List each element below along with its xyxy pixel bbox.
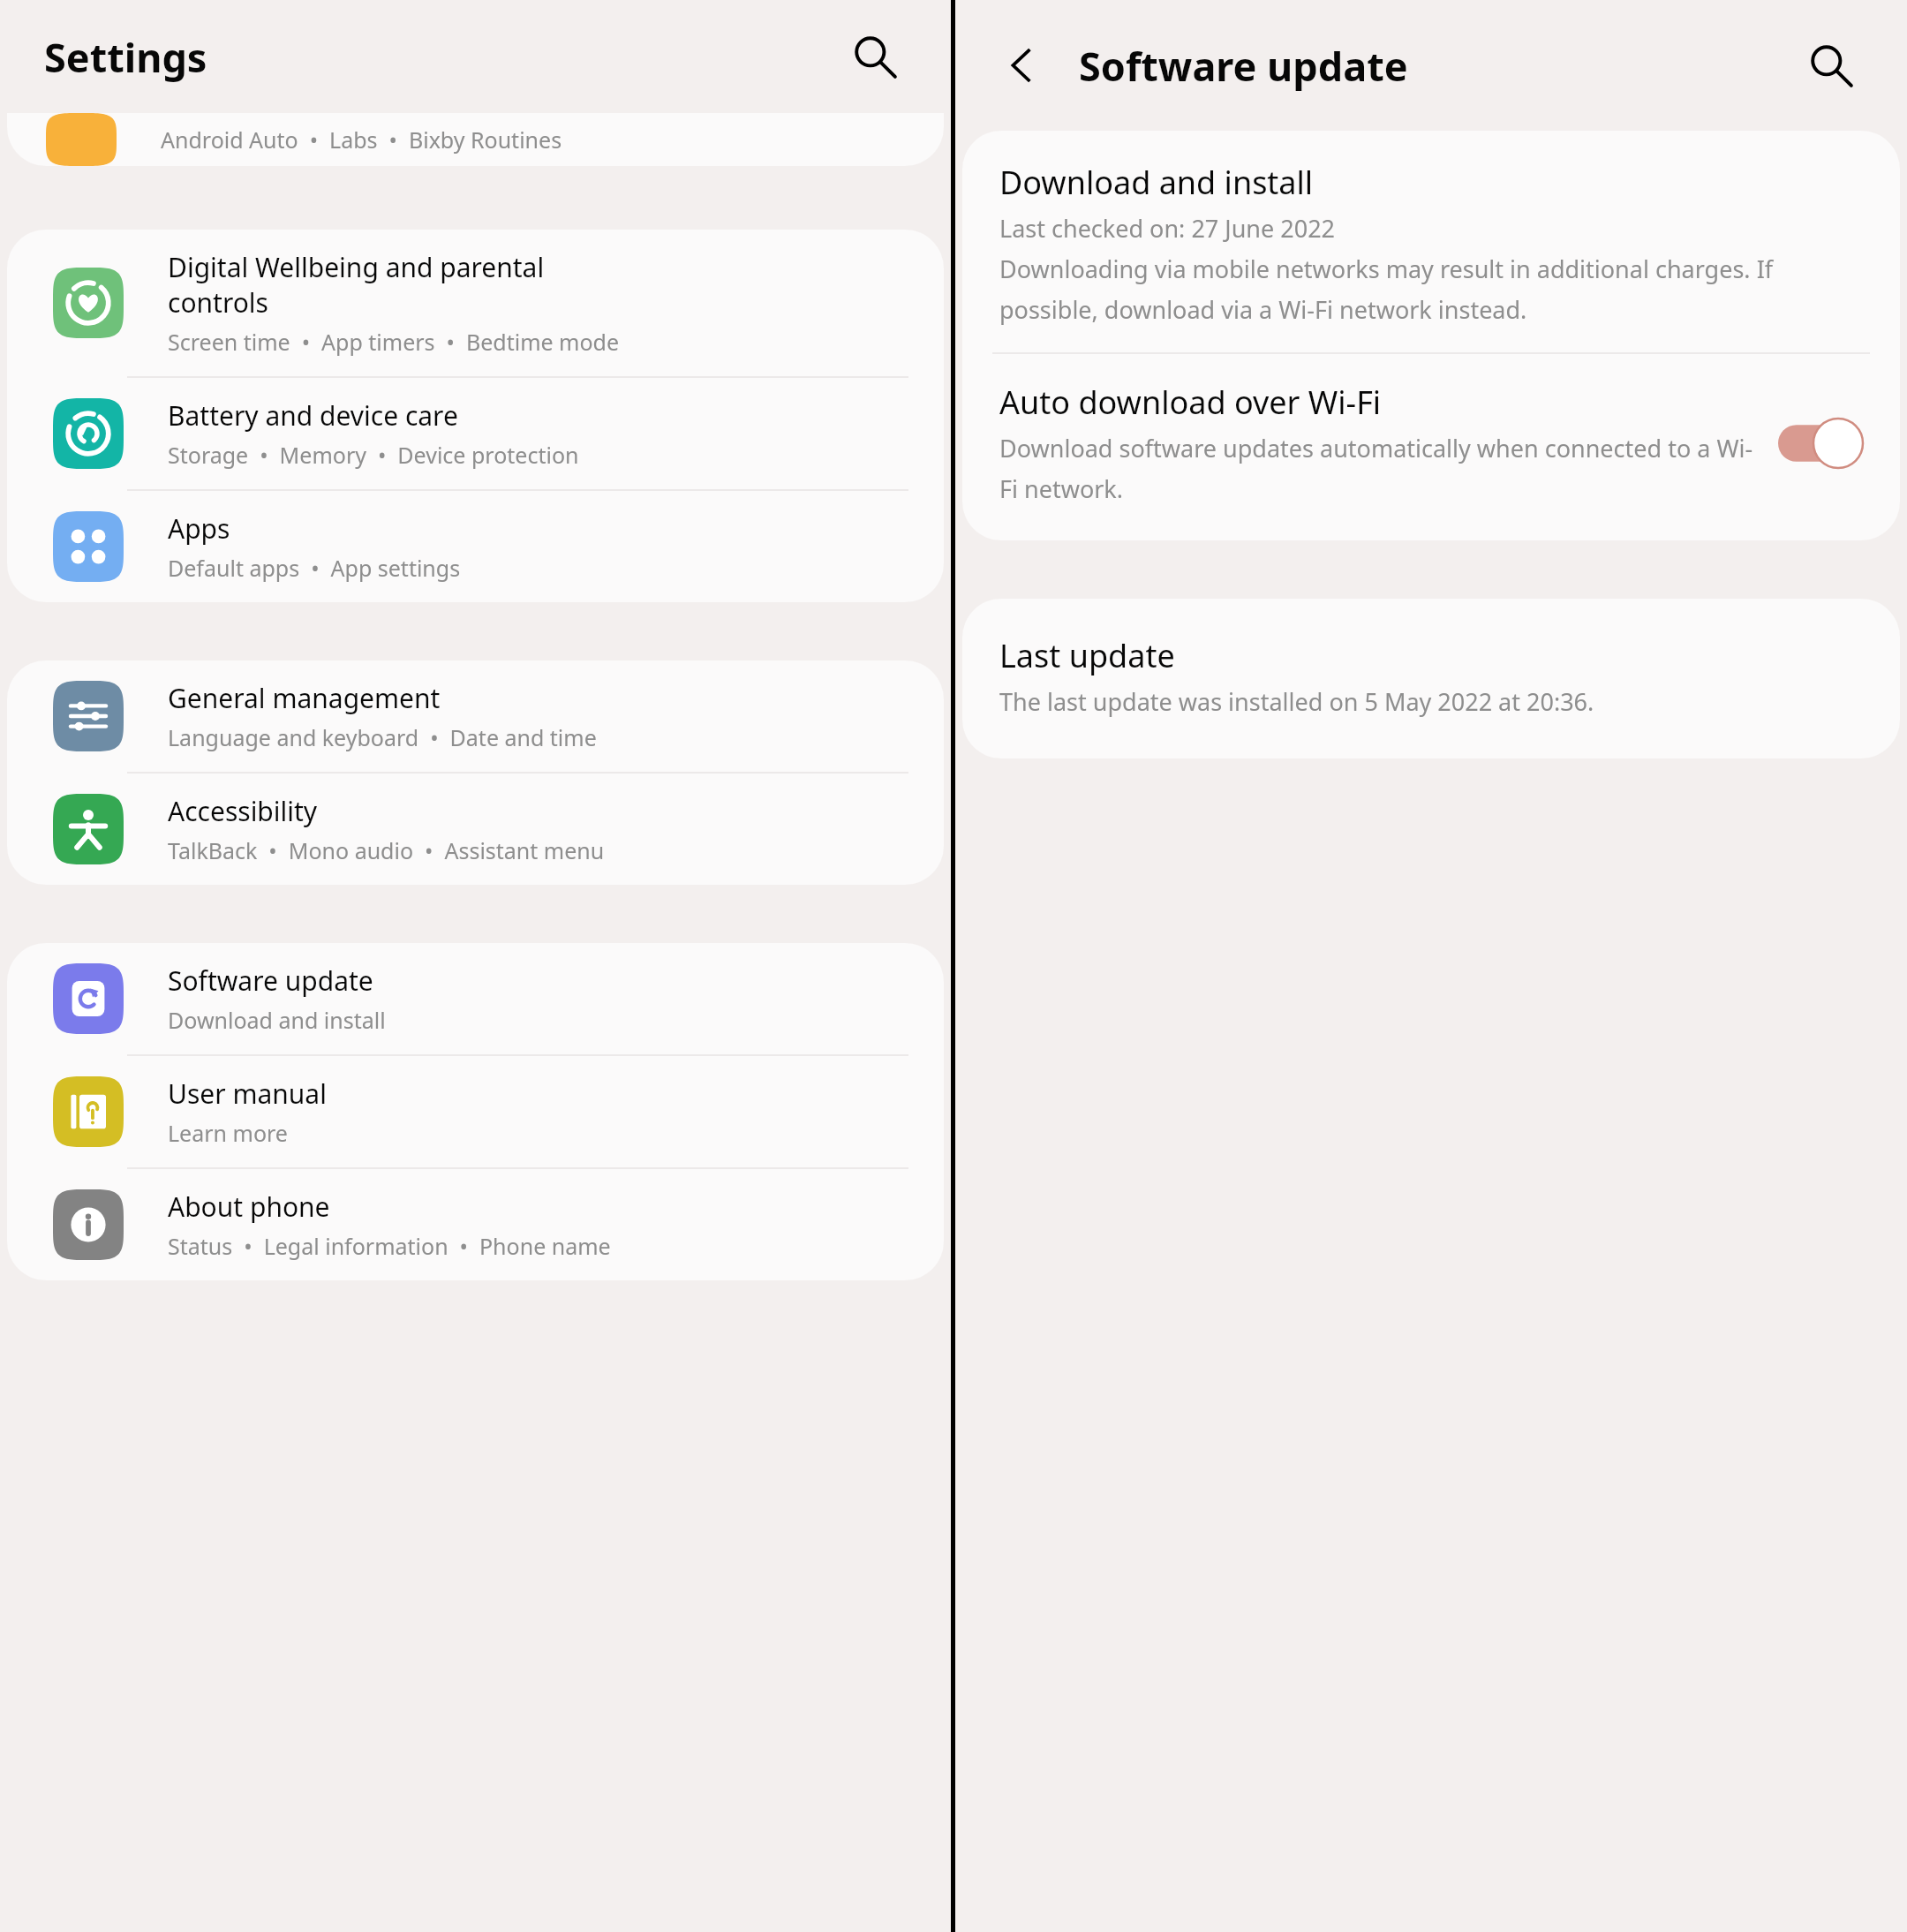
staticText: Download and install (999, 161, 1314, 204)
button[interactable]: Auto download over Wi-Fi (962, 354, 1900, 540)
staticText: Apps (168, 510, 230, 547)
button[interactable]: Digital Wellbeing and parental controls (7, 230, 944, 376)
button[interactable]: Last update (962, 599, 1900, 758)
staticText: Software update (1079, 39, 1408, 93)
staticText: Last update (999, 634, 1175, 677)
staticText: TalkBack • Mono audio • Assistant menu (168, 835, 605, 865)
staticText: Storage • Memory • Device protection (168, 440, 579, 470)
staticText: Software update (168, 962, 373, 999)
staticText: Digital Wellbeing and parental controls (168, 249, 545, 321)
staticText: Download software updates automatically … (999, 432, 1757, 505)
button[interactable]: Software update (7, 943, 944, 1054)
button[interactable]: Apps (7, 491, 944, 602)
button[interactable]: Download and install (962, 131, 1900, 352)
staticText: Auto download over Wi-Fi (999, 381, 1382, 424)
staticText: Battery and device care (168, 397, 458, 434)
staticText: Learn more (168, 1118, 288, 1148)
button[interactable]: User manual (7, 1056, 944, 1167)
staticText: Screen time • App timers • Bedtime mode (168, 327, 620, 357)
button[interactable]: Android Auto • Labs • Bixby Routines (7, 113, 944, 166)
button[interactable]: General management (7, 660, 944, 772)
staticText: About phone (168, 1189, 330, 1225)
button[interactable]: Search (1799, 34, 1863, 97)
button[interactable]: Auto download over Wi-Fi toggle (1778, 419, 1863, 468)
button[interactable]: Search (843, 25, 907, 88)
staticText: Status • Legal information • Phone name (168, 1231, 611, 1261)
button[interactable]: Back (991, 34, 1054, 97)
staticText: The last update was installed on 5 May 2… (999, 685, 1594, 718)
staticText: Default apps • App settings (168, 553, 461, 583)
button[interactable]: Battery and device care (7, 378, 944, 489)
staticText: Android Auto • Labs • Bixby Routines (161, 125, 562, 155)
button[interactable]: Accessibility (7, 774, 944, 885)
staticText: Last checked on: 27 June 2022 Downloadin… (999, 212, 1863, 326)
staticText: Accessibility (168, 793, 318, 829)
staticText: Download and install (168, 1005, 386, 1035)
staticText: User manual (168, 1075, 327, 1112)
staticText: Settings (44, 30, 207, 84)
staticText: Language and keyboard • Date and time (168, 722, 597, 752)
staticText: General management (168, 680, 441, 716)
button[interactable]: About phone (7, 1169, 944, 1280)
